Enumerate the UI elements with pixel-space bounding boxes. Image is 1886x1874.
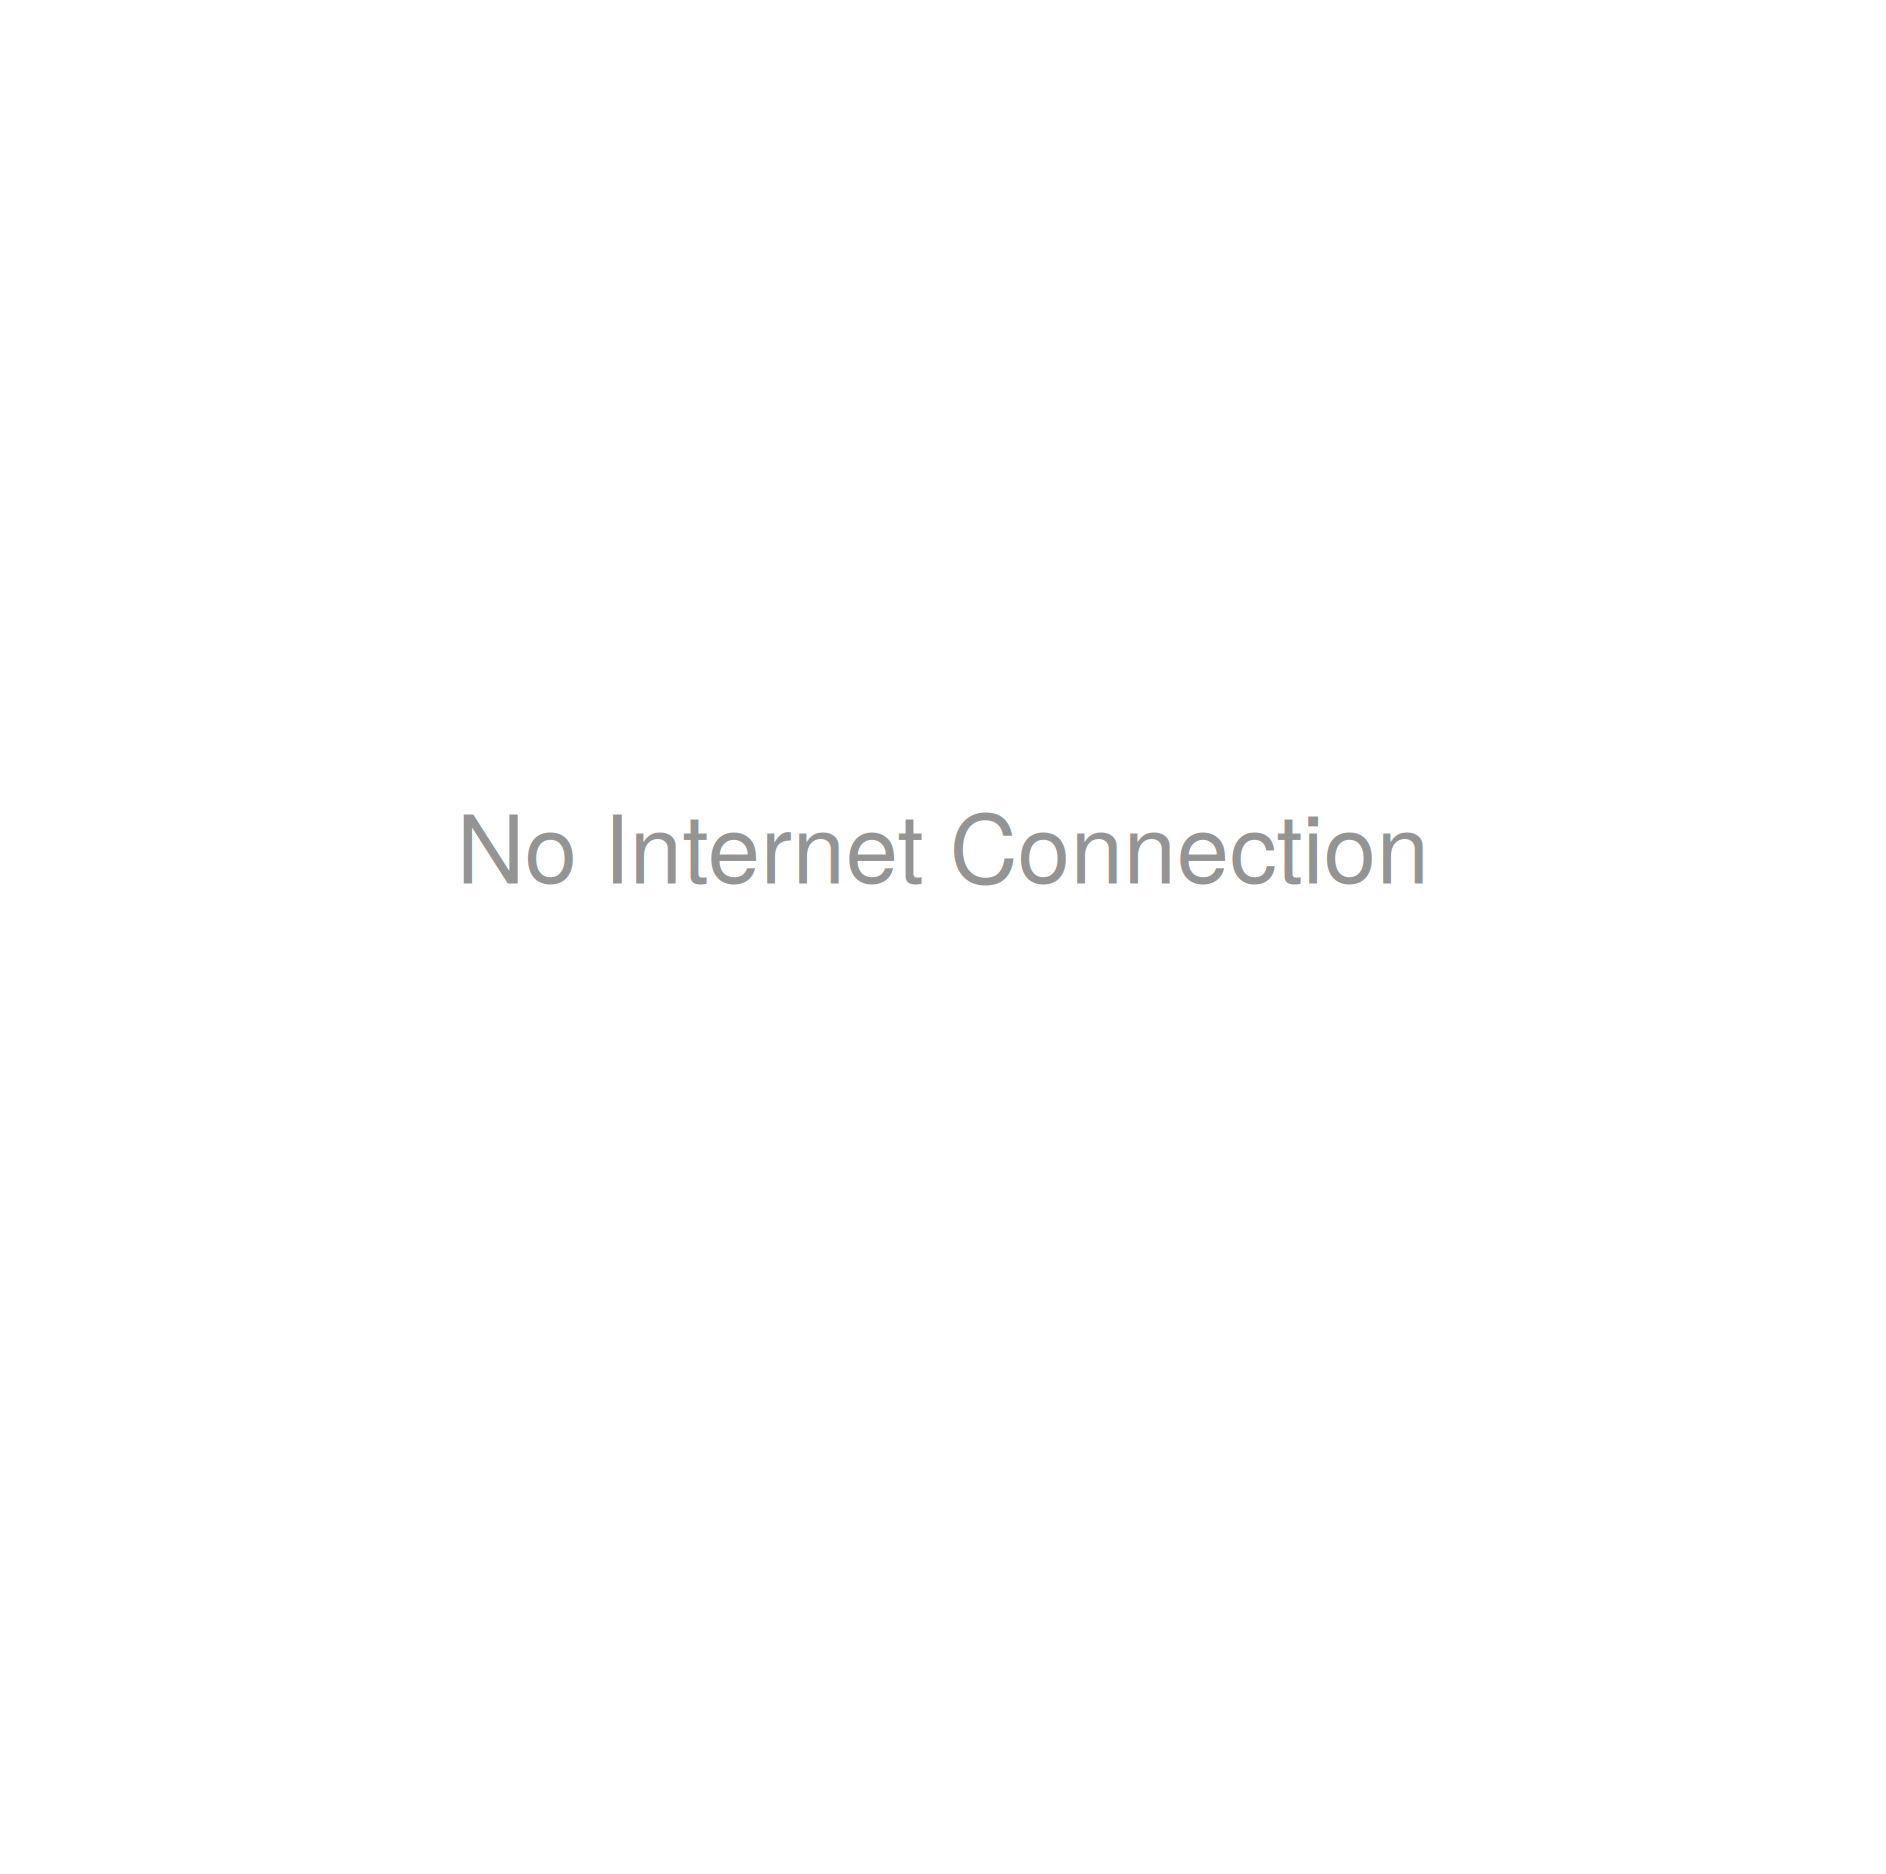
staticText: No Internet Connection: [456, 775, 1429, 910]
